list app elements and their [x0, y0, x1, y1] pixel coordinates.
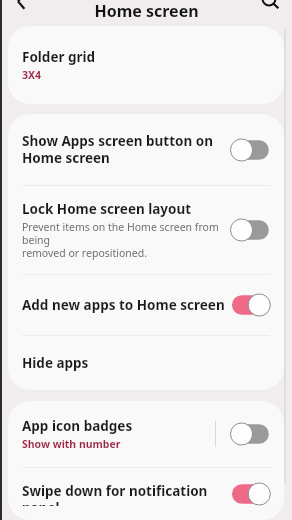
staticText: Prevent items on the Home screen from be… [22, 220, 226, 260]
button[interactable]: Toggle off [232, 218, 272, 242]
button[interactable]: App icon badges [8, 401, 284, 467]
staticText: Show Apps screen button on Home screen [22, 132, 214, 167]
button[interactable]: Toggle off [232, 422, 272, 446]
staticText: Folder grid [22, 48, 96, 66]
staticText: Show with number [22, 437, 121, 451]
button[interactable]: Show Apps screen button on Home screen [8, 114, 284, 185]
button[interactable]: Hide apps [8, 336, 284, 390]
button[interactable]: Search [248, 0, 292, 20]
button[interactable]: Toggle off [232, 138, 272, 162]
button[interactable]: Lock Home screen layout [8, 186, 284, 274]
staticText: Swipe down for notification panel [22, 482, 226, 506]
button[interactable]: Back [0, 0, 44, 20]
button[interactable]: Toggle on [232, 293, 272, 317]
staticText: 3X4 [22, 68, 42, 82]
button[interactable]: Toggle on [232, 482, 272, 506]
button[interactable]: Add new apps to Home screen [8, 275, 284, 335]
button[interactable]: Folder grid [8, 26, 284, 104]
staticText: Hide apps [22, 354, 89, 372]
staticText: App icon badges [22, 417, 133, 435]
button[interactable]: Swipe down for notification panel [8, 468, 284, 520]
staticText: Add new apps to Home screen [22, 296, 225, 314]
staticText: Home screen [94, 0, 199, 20]
staticText: Lock Home screen layout [22, 200, 192, 218]
